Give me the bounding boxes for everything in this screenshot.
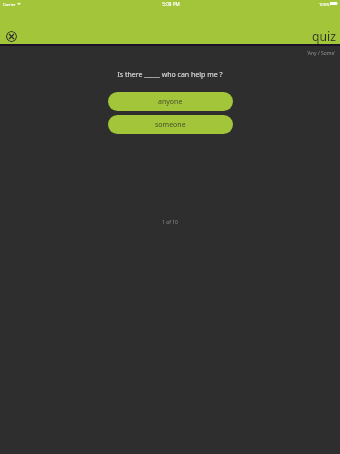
button[interactable]: anyone <box>108 92 233 111</box>
staticText: anyone <box>158 97 183 107</box>
button[interactable]: quiz <box>312 28 336 45</box>
staticText: Carrier <box>3 2 16 7</box>
staticText: someone <box>155 120 186 130</box>
staticText: 100% <box>319 2 330 8</box>
staticText: 'Any / Some' <box>307 50 336 57</box>
other: Wi-Fi signal <box>17 2 21 5</box>
button[interactable]: someone <box>108 115 233 134</box>
staticText: 1 of 10 <box>0 219 340 226</box>
staticText: Is there _____ who can help me ? <box>0 70 340 80</box>
other: Battery full <box>330 2 338 5</box>
staticText: 5:08 PM <box>1 1 340 7</box>
button[interactable]: Close quiz <box>6 31 17 42</box>
